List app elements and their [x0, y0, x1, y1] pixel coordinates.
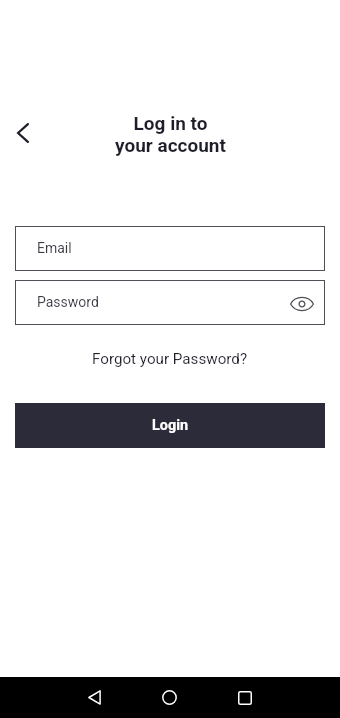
- staticText: Login: [152, 417, 189, 434]
- button[interactable]: Login: [15, 403, 325, 448]
- button[interactable]: Password: [15, 280, 325, 325]
- staticText: Log in to your account: [115, 112, 226, 156]
- button[interactable]: Email: [15, 226, 325, 271]
- staticText: Password: [37, 294, 99, 310]
- button[interactable]: Back: [3, 113, 43, 153]
- button[interactable]: Recent apps: [225, 677, 265, 718]
- button[interactable]: Home: [149, 677, 189, 718]
- button[interactable]: Show password: [285, 286, 319, 320]
- button[interactable]: Back: [74, 677, 114, 718]
- staticText: Email: [37, 240, 72, 256]
- button[interactable]: Forgot your Password?: [92, 350, 248, 368]
